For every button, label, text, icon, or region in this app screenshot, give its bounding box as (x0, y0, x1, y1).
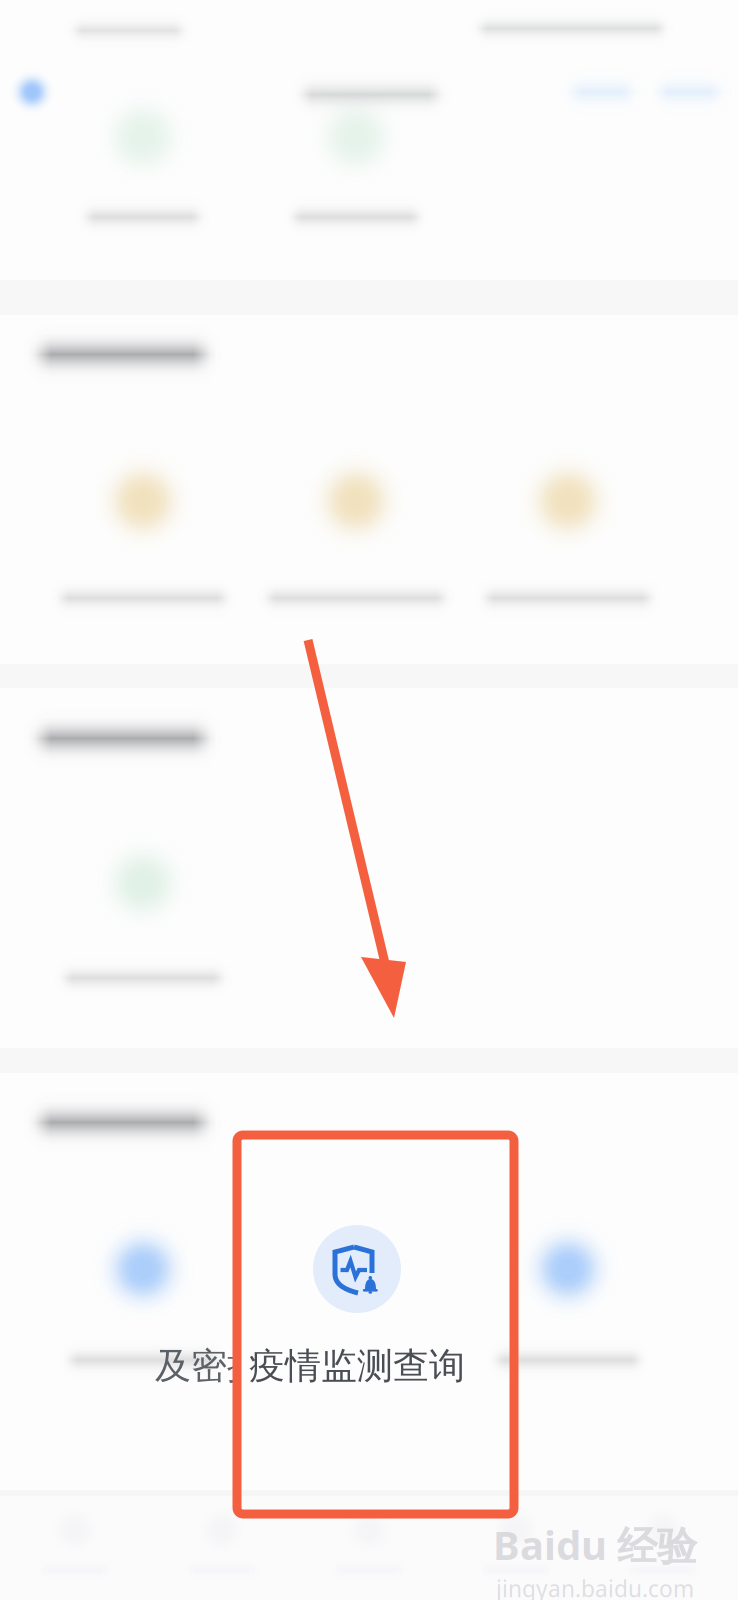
button[interactable]: 标签 (442, 1496, 589, 1600)
button[interactable]: 标签 (295, 1496, 442, 1600)
button[interactable]: 分享 (558, 56, 646, 128)
button[interactable] (37, 835, 249, 1025)
button[interactable]: 更多 (645, 56, 733, 128)
button[interactable] (37, 454, 249, 644)
button[interactable] (37, 82, 249, 272)
button[interactable] (462, 1219, 674, 1409)
button[interactable] (250, 454, 462, 644)
button[interactable] (250, 82, 462, 272)
staticText: 疫情监测查询 (249, 1344, 465, 1388)
staticText: jingyan.baidu.com (496, 1573, 694, 1600)
button[interactable]: 标签 (148, 1496, 295, 1600)
button[interactable] (462, 454, 674, 644)
staticText: 及密接 (155, 1344, 263, 1388)
button[interactable] (37, 1219, 249, 1409)
button[interactable]: 疫情监测查询 (232, 1217, 482, 1417)
button[interactable]: 标签 (589, 1496, 736, 1600)
staticText: Baidu 经验 (493, 1518, 697, 1571)
button[interactable]: 返回 (0, 56, 76, 128)
